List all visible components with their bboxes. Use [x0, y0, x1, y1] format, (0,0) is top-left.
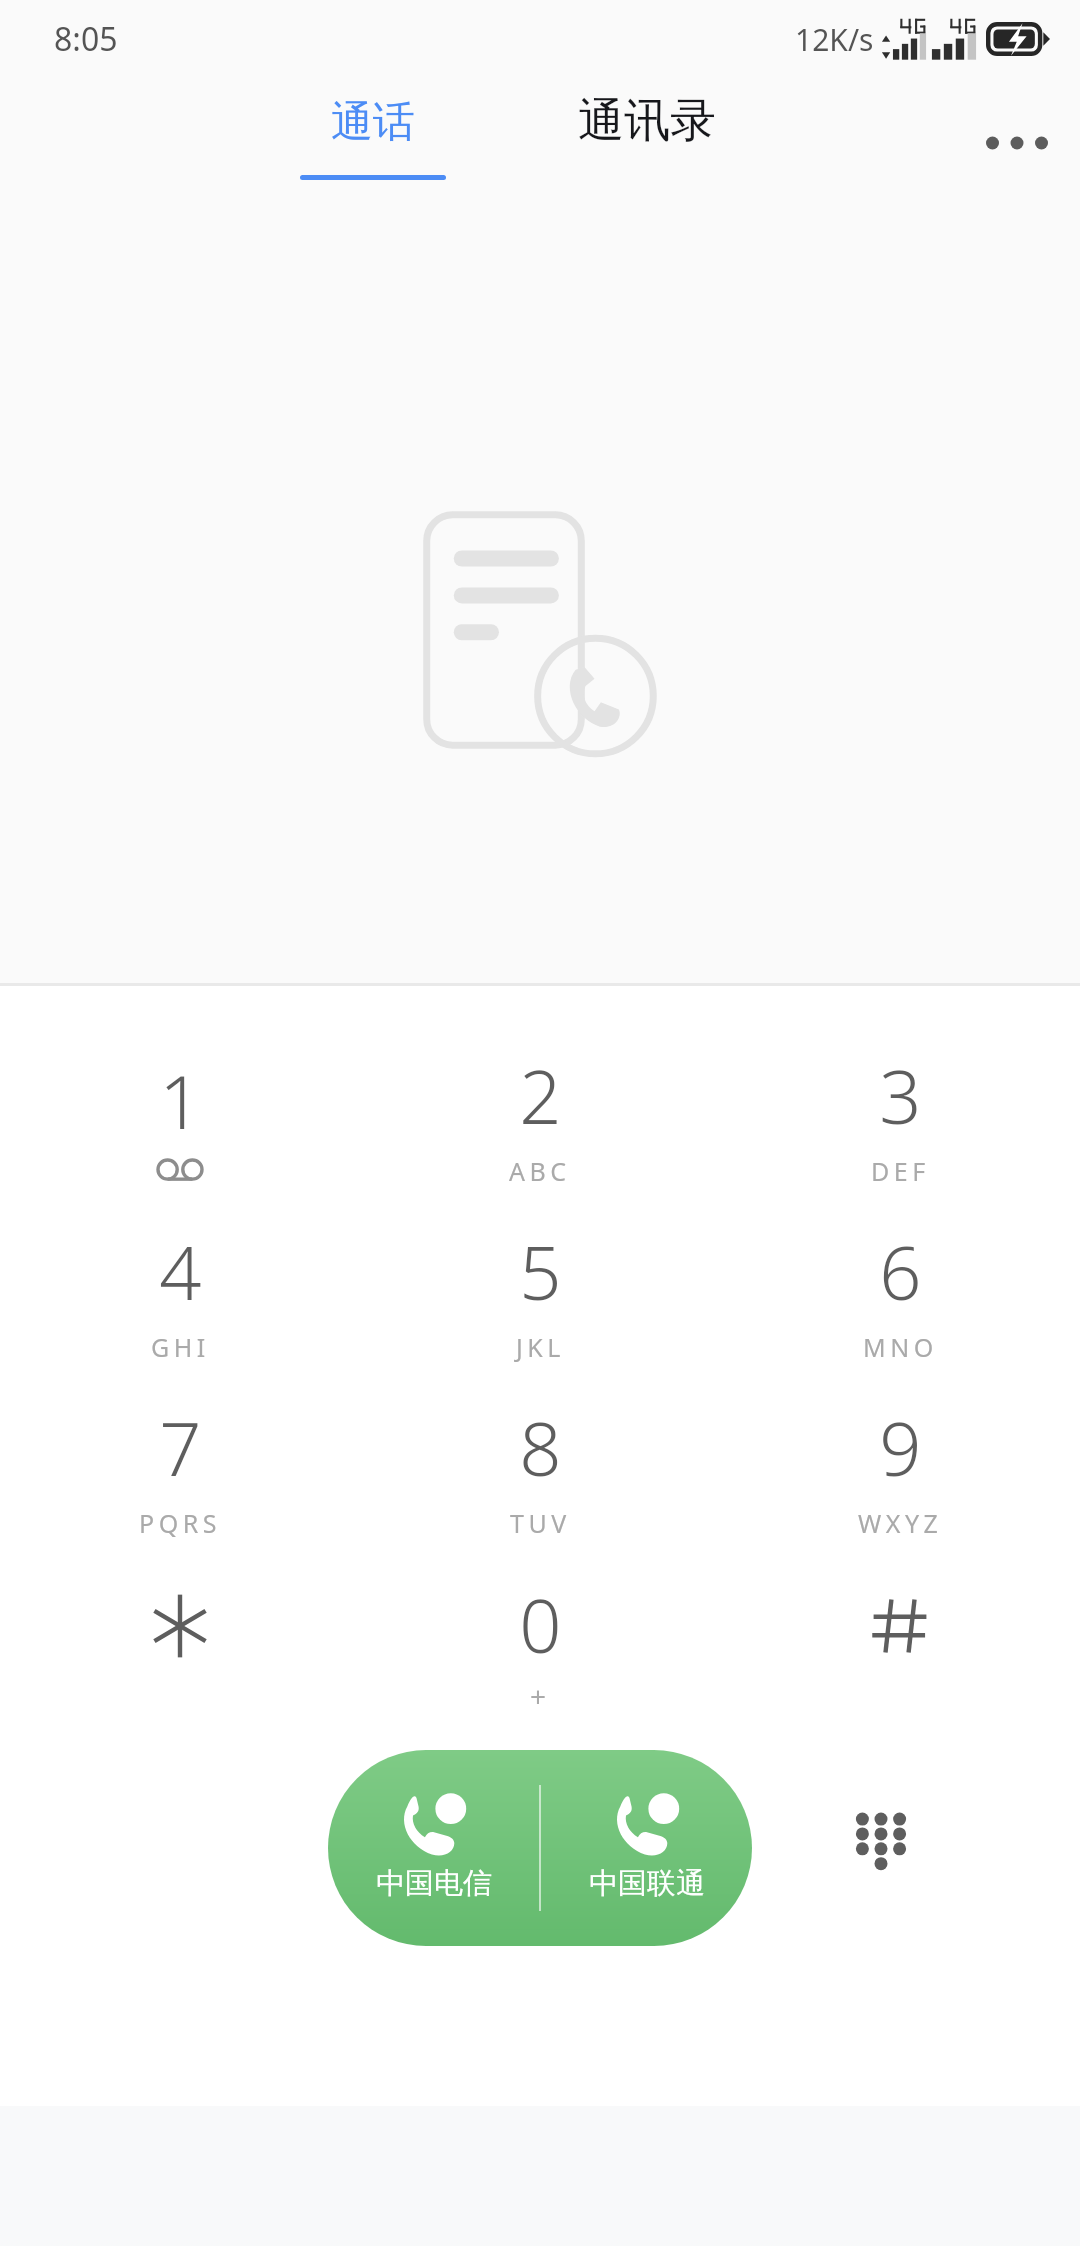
- staticText: +: [530, 1677, 551, 1715]
- staticText: WXYZ: [858, 1506, 943, 1540]
- button[interactable]: 1: [0, 1028, 360, 1204]
- staticText: JKL: [516, 1330, 565, 1364]
- button[interactable]: 通话: [300, 96, 446, 180]
- staticText: 8:05: [54, 17, 118, 61]
- staticText: DEF: [871, 1154, 930, 1188]
- staticText: 0: [519, 1574, 562, 1675]
- staticText: MNO: [863, 1330, 938, 1364]
- button[interactable]: 5: [360, 1204, 720, 1380]
- button[interactable]: *: [0, 1556, 360, 1732]
- button[interactable]: 9: [720, 1380, 1080, 1556]
- button[interactable]: 3: [720, 1028, 1080, 1204]
- staticText: GHI: [151, 1330, 210, 1364]
- button[interactable]: 中国电信: [328, 1750, 539, 1946]
- button[interactable]: 4: [0, 1204, 360, 1380]
- button[interactable]: 0: [360, 1556, 720, 1732]
- staticText: 8: [519, 1397, 562, 1498]
- staticText: 中国联通: [589, 1865, 705, 1902]
- button[interactable]: 7: [0, 1380, 360, 1556]
- button[interactable]: 6: [720, 1204, 1080, 1380]
- button[interactable]: Hide dialpad: [816, 1777, 946, 1907]
- staticText: 3: [879, 1045, 922, 1146]
- staticText: 通话: [331, 96, 415, 149]
- staticText: PQRS: [139, 1506, 221, 1540]
- button[interactable]: More options: [962, 88, 1072, 198]
- staticText: TUV: [510, 1506, 571, 1540]
- staticText: 5: [519, 1221, 562, 1322]
- button[interactable]: 2: [360, 1028, 720, 1204]
- staticText: 7: [159, 1397, 202, 1498]
- button[interactable]: 中国联通: [541, 1750, 752, 1946]
- staticText: 12K/s: [795, 19, 874, 60]
- staticText: 2: [519, 1045, 562, 1146]
- staticText: 通讯录: [578, 92, 716, 150]
- button[interactable]: #: [720, 1556, 1080, 1732]
- button[interactable]: 通讯录: [578, 92, 716, 150]
- button[interactable]: 8: [360, 1380, 720, 1556]
- staticText: 9: [879, 1397, 922, 1498]
- staticText: ABC: [509, 1154, 571, 1188]
- staticText: 4: [159, 1221, 202, 1322]
- staticText: 中国电信: [376, 1865, 492, 1902]
- staticText: 1: [159, 1050, 202, 1151]
- staticText: 6: [879, 1221, 922, 1322]
